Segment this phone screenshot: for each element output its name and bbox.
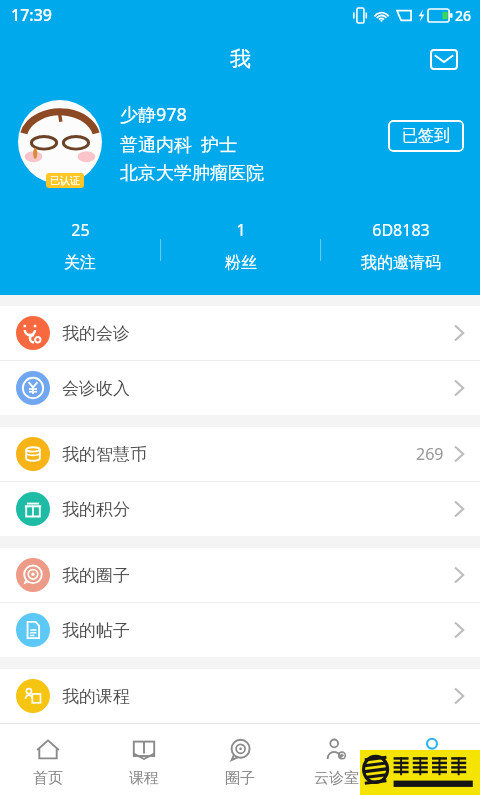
staticText: 25: [71, 219, 90, 241]
staticText: 我的课程: [62, 686, 130, 707]
staticText: 会诊收入: [62, 378, 130, 399]
staticText: 我的邀请码: [361, 253, 441, 273]
staticText: 17:39: [11, 4, 52, 26]
staticText: 1: [236, 219, 246, 241]
button[interactable]: 云诊室: [288, 724, 384, 800]
button[interactable]: Messages: [424, 39, 464, 79]
button[interactable]: 我的帖子: [0, 603, 480, 657]
button[interactable]: 已签到: [388, 120, 464, 152]
staticText: 普通内科 护士: [120, 132, 238, 157]
staticText: 少静978: [120, 102, 187, 127]
staticText: 6D8183: [372, 219, 430, 241]
staticText: 269: [416, 443, 444, 465]
staticText: 我的会诊: [62, 323, 130, 344]
button[interactable]: 我: [384, 724, 480, 800]
button[interactable]: 会诊收入: [0, 361, 480, 415]
staticText: 我的圈子: [62, 565, 130, 586]
staticText: 我: [425, 769, 440, 788]
button[interactable]: 我的积分: [0, 482, 480, 536]
staticText: 课程: [129, 769, 159, 788]
staticText: 云诊室: [314, 769, 359, 788]
staticText: 我的帖子: [62, 620, 130, 641]
staticText: 26: [455, 6, 472, 25]
staticText: 首页: [33, 769, 63, 788]
staticText: 粉丝: [225, 253, 257, 273]
button[interactable]: 课程: [96, 724, 192, 800]
staticText: 圈子: [225, 769, 255, 788]
staticText: 关注: [64, 253, 96, 273]
staticText: 已认证: [50, 174, 80, 187]
button[interactable]: 我的圈子: [0, 548, 480, 602]
staticText: 我的积分: [62, 499, 130, 520]
button[interactable]: 首页: [0, 724, 96, 800]
staticText: 北京大学肿瘤医院: [120, 162, 264, 185]
button[interactable]: 6D8183: [321, 215, 480, 285]
staticText: 已签到: [402, 126, 450, 146]
staticText: 我: [230, 46, 251, 72]
button[interactable]: 1: [161, 215, 320, 285]
button[interactable]: 我的课程: [0, 669, 480, 723]
button[interactable]: 我的智慧币: [0, 427, 480, 481]
button[interactable]: 圈子: [192, 724, 288, 800]
button[interactable]: 我的会诊: [0, 306, 480, 360]
staticText: 我的智慧币: [62, 444, 147, 465]
button[interactable]: 25: [0, 215, 160, 285]
